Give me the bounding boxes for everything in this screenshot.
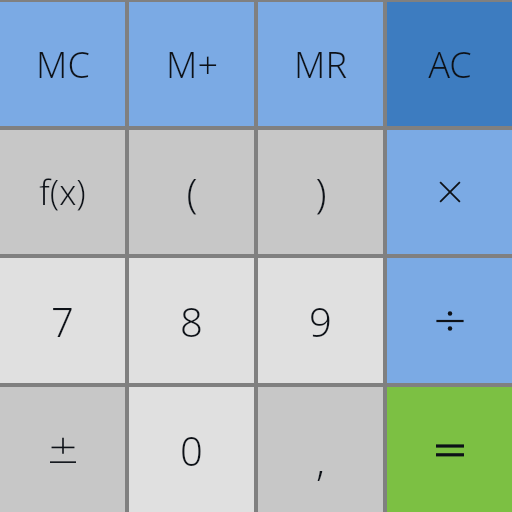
button[interactable]: AC: [387, 2, 512, 126]
staticText: 8: [180, 294, 203, 348]
button[interactable]: 8: [129, 258, 254, 383]
staticText: 0: [180, 423, 203, 477]
staticText: ,: [316, 433, 325, 487]
button[interactable]: Plus minus: [0, 387, 125, 512]
staticText: 7: [51, 294, 74, 348]
button[interactable]: f(x): [0, 130, 125, 254]
button[interactable]: Divide: [387, 258, 512, 383]
button[interactable]: ): [258, 130, 383, 254]
staticText: ): [315, 165, 327, 219]
button[interactable]: ,: [258, 387, 383, 512]
button[interactable]: Multiply: [387, 130, 512, 254]
staticText: MC: [36, 40, 90, 89]
button[interactable]: Equals: [387, 387, 512, 512]
button[interactable]: (: [129, 130, 254, 254]
staticText: MR: [294, 40, 347, 89]
button[interactable]: 0: [129, 387, 254, 512]
staticText: 9: [309, 294, 332, 348]
staticText: AC: [428, 40, 472, 89]
staticText: f(x): [39, 169, 86, 215]
button[interactable]: MR: [258, 2, 383, 126]
button[interactable]: MC: [0, 2, 125, 126]
button[interactable]: M+: [129, 2, 254, 126]
staticText: (: [186, 165, 198, 219]
button[interactable]: 7: [0, 258, 125, 383]
staticText: M+: [166, 40, 218, 89]
button[interactable]: 9: [258, 258, 383, 383]
